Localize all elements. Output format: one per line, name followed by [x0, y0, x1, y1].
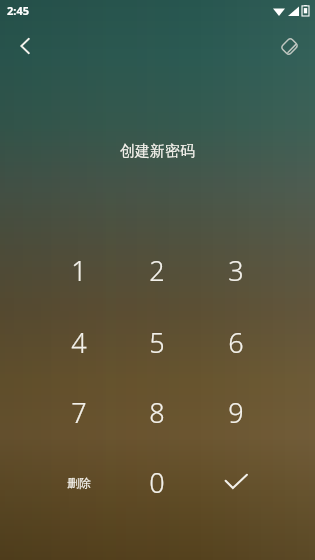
staticText: 5 [149, 324, 165, 361]
button[interactable]: 9 [199, 381, 273, 443]
staticText: 4 [71, 324, 87, 361]
button[interactable]: 6 [199, 311, 273, 373]
button[interactable]: Rotate screen [269, 26, 309, 66]
staticText: 3 [228, 252, 244, 289]
button[interactable]: 8 [120, 381, 194, 443]
staticText: 8 [149, 394, 165, 431]
staticText: 删除 [67, 475, 91, 490]
staticText: 7 [71, 394, 87, 431]
staticText: 9 [228, 394, 244, 431]
button[interactable]: 删除 [42, 451, 116, 513]
staticText: 创建新密码 [120, 142, 195, 161]
button[interactable]: 7 [42, 381, 116, 443]
staticText: 1 [71, 252, 87, 289]
button[interactable]: 2 [120, 239, 194, 301]
staticText: 2:45 [7, 3, 29, 18]
button[interactable]: 5 [120, 311, 194, 373]
button[interactable]: Confirm [199, 451, 273, 513]
button[interactable]: Back [6, 26, 46, 66]
staticText: 6 [228, 324, 244, 361]
button[interactable]: 0 [120, 451, 194, 513]
button[interactable]: 1 [42, 239, 116, 301]
staticText: 0 [149, 464, 165, 501]
staticText: 2 [149, 252, 165, 289]
button[interactable]: 4 [42, 311, 116, 373]
button[interactable]: 3 [199, 239, 273, 301]
